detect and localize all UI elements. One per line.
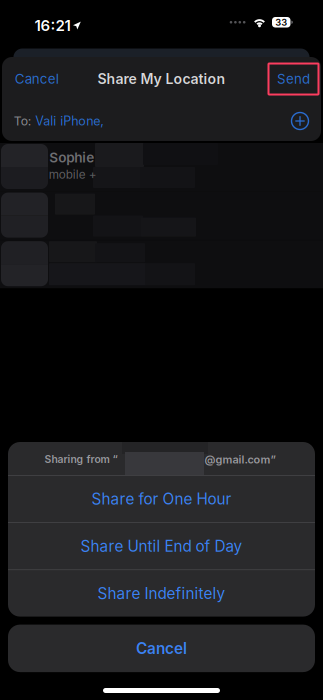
staticText: Sophie	[49, 149, 94, 166]
button[interactable]	[0, 192, 323, 240]
button[interactable]: Share for One Hour	[8, 476, 315, 522]
button[interactable]: Share Until End of Day	[8, 523, 315, 569]
staticText: 16:21	[34, 16, 70, 35]
staticText: To:	[14, 114, 32, 128]
staticText: Share Indefinitely	[97, 584, 225, 603]
button[interactable]: Add recipient	[289, 110, 311, 132]
button[interactable]: Share Indefinitely	[8, 570, 315, 617]
button[interactable]: Cancel	[0, 625, 323, 672]
staticText: Vali iPhone,	[35, 113, 104, 129]
staticText: mobile +	[49, 167, 97, 182]
staticText: Share My Location	[97, 70, 225, 87]
button[interactable]: Send	[268, 63, 321, 94]
button[interactable]: Cancel	[2, 59, 69, 99]
staticText: Send	[277, 71, 310, 87]
staticText: @gmail.com”	[204, 453, 275, 466]
staticText: Cancel	[136, 639, 187, 658]
button[interactable]: Sophie	[0, 143, 323, 191]
staticText: Share for One Hour	[91, 490, 231, 508]
staticText: 33	[275, 17, 287, 28]
staticText: Cancel	[15, 71, 59, 87]
button[interactable]	[0, 240, 323, 288]
staticText: Sharing from “	[44, 453, 117, 466]
staticText: Share Until End of Day	[80, 537, 242, 555]
